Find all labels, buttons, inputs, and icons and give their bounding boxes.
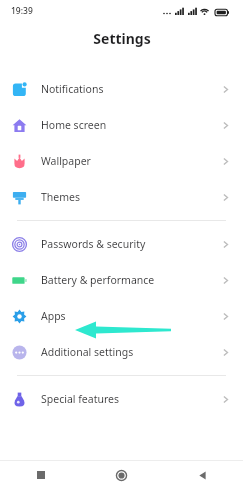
staticText: Wallpaper bbox=[41, 154, 91, 168]
staticText: Apps bbox=[41, 309, 66, 323]
button[interactable]: Wallpaper bbox=[0, 143, 243, 179]
staticText: Passwords & security bbox=[41, 237, 146, 251]
staticText: Additional settings bbox=[41, 345, 134, 359]
button[interactable]: Home screen bbox=[0, 107, 243, 143]
button[interactable]: Apps bbox=[0, 298, 243, 334]
button[interactable]: Themes bbox=[0, 179, 243, 215]
staticText: Battery & performance bbox=[41, 273, 155, 287]
button[interactable]: Battery & performance bbox=[0, 262, 243, 298]
staticText: Notifications bbox=[41, 82, 104, 96]
staticText: Settings bbox=[93, 29, 151, 48]
staticText: Special features bbox=[41, 392, 120, 406]
staticText: 19:39 bbox=[11, 5, 33, 17]
button[interactable]: Recents bbox=[0, 461, 81, 489]
button[interactable]: Notifications bbox=[0, 71, 243, 107]
button[interactable]: Home bbox=[81, 461, 162, 489]
staticText: Themes bbox=[41, 190, 81, 204]
button[interactable]: Additional settings bbox=[0, 334, 243, 370]
staticText: Home screen bbox=[41, 118, 107, 132]
button[interactable]: Passwords & security bbox=[0, 226, 243, 262]
button[interactable]: Special features bbox=[0, 381, 243, 417]
button[interactable]: Back bbox=[162, 461, 243, 489]
